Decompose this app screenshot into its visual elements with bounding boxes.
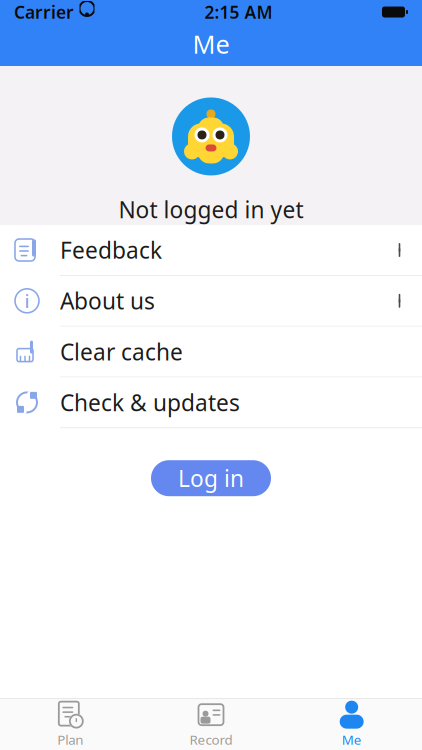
staticText: Log in [178,463,244,493]
staticText: Plan [57,731,83,748]
staticText: Not logged in yet [118,194,303,224]
staticText: Carrier [14,0,74,23]
staticText: 2:15 AM [204,0,272,23]
button[interactable]: Log in [151,460,271,496]
staticText: Clear cache [60,336,183,367]
staticText: i [24,288,29,313]
staticText: Feedback [60,235,162,265]
button[interactable]: i [0,276,422,327]
staticText: Me [342,731,362,748]
button[interactable]: Record [141,697,281,750]
button[interactable]: Me [281,697,422,750]
button[interactable]: Check & updates [0,377,422,428]
staticText: Check & updates [60,387,240,417]
button[interactable]: Feedback [0,225,422,276]
button[interactable]: Clear cache [0,327,422,377]
button[interactable]: Plan [0,697,141,750]
staticText: About us [60,286,155,316]
staticText: Me [192,27,229,61]
staticText: Record [189,731,232,748]
